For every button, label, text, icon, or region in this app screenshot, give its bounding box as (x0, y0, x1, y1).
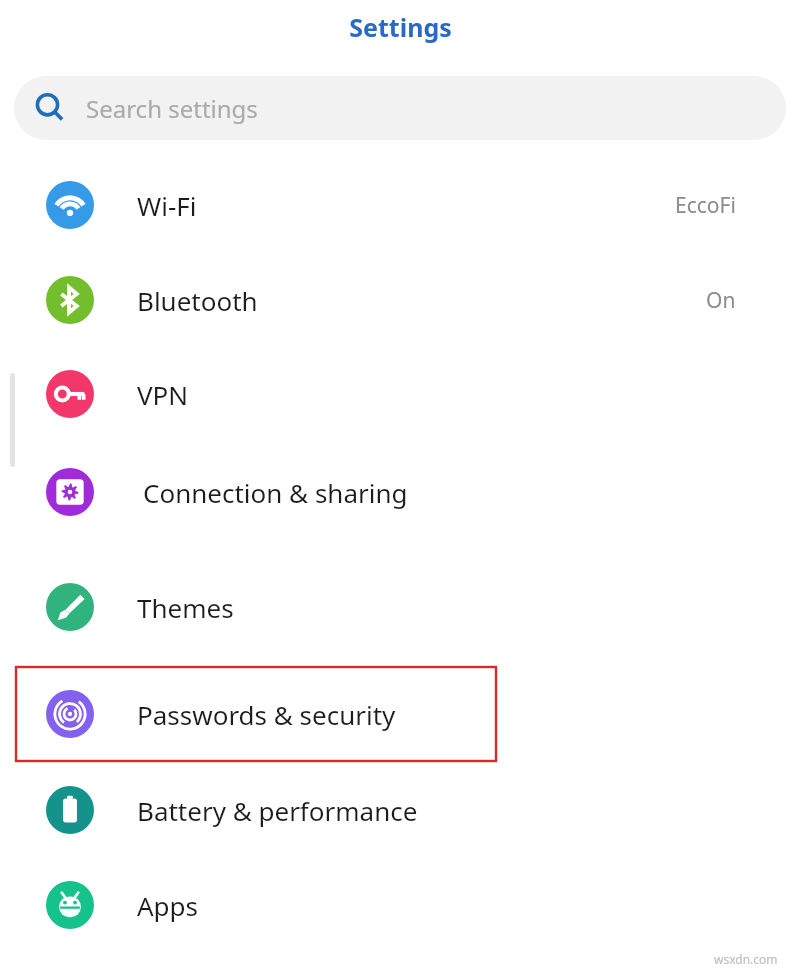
staticText: Battery & performance (137, 793, 418, 828)
button[interactable]: Battery & performance (0, 766, 800, 854)
staticText: Search settings (86, 92, 258, 125)
other: Search (32, 90, 68, 126)
staticText: EccoFi (675, 191, 736, 220)
staticText: On (706, 286, 736, 315)
staticText: Wi-Fi (137, 188, 197, 223)
button[interactable]: Themes (0, 563, 800, 651)
staticText: VPN (137, 377, 189, 412)
staticText: Passwords & security (137, 697, 396, 732)
staticText: Bluetooth (137, 283, 258, 318)
staticText: Themes (137, 590, 234, 625)
button[interactable]: Wi-Fi (0, 161, 800, 249)
button[interactable]: VPN (0, 350, 800, 438)
staticText: wsxdn.com (714, 951, 778, 967)
button[interactable]: Bluetooth (0, 256, 800, 344)
staticText: Connection & sharing (143, 475, 408, 510)
staticText: Settings (349, 10, 452, 44)
staticText: Apps (137, 888, 199, 923)
button[interactable]: Connection & sharing (0, 448, 800, 536)
button[interactable]: Search (14, 76, 786, 140)
button[interactable]: Apps (0, 861, 800, 949)
button[interactable]: Passwords & security (0, 670, 800, 758)
